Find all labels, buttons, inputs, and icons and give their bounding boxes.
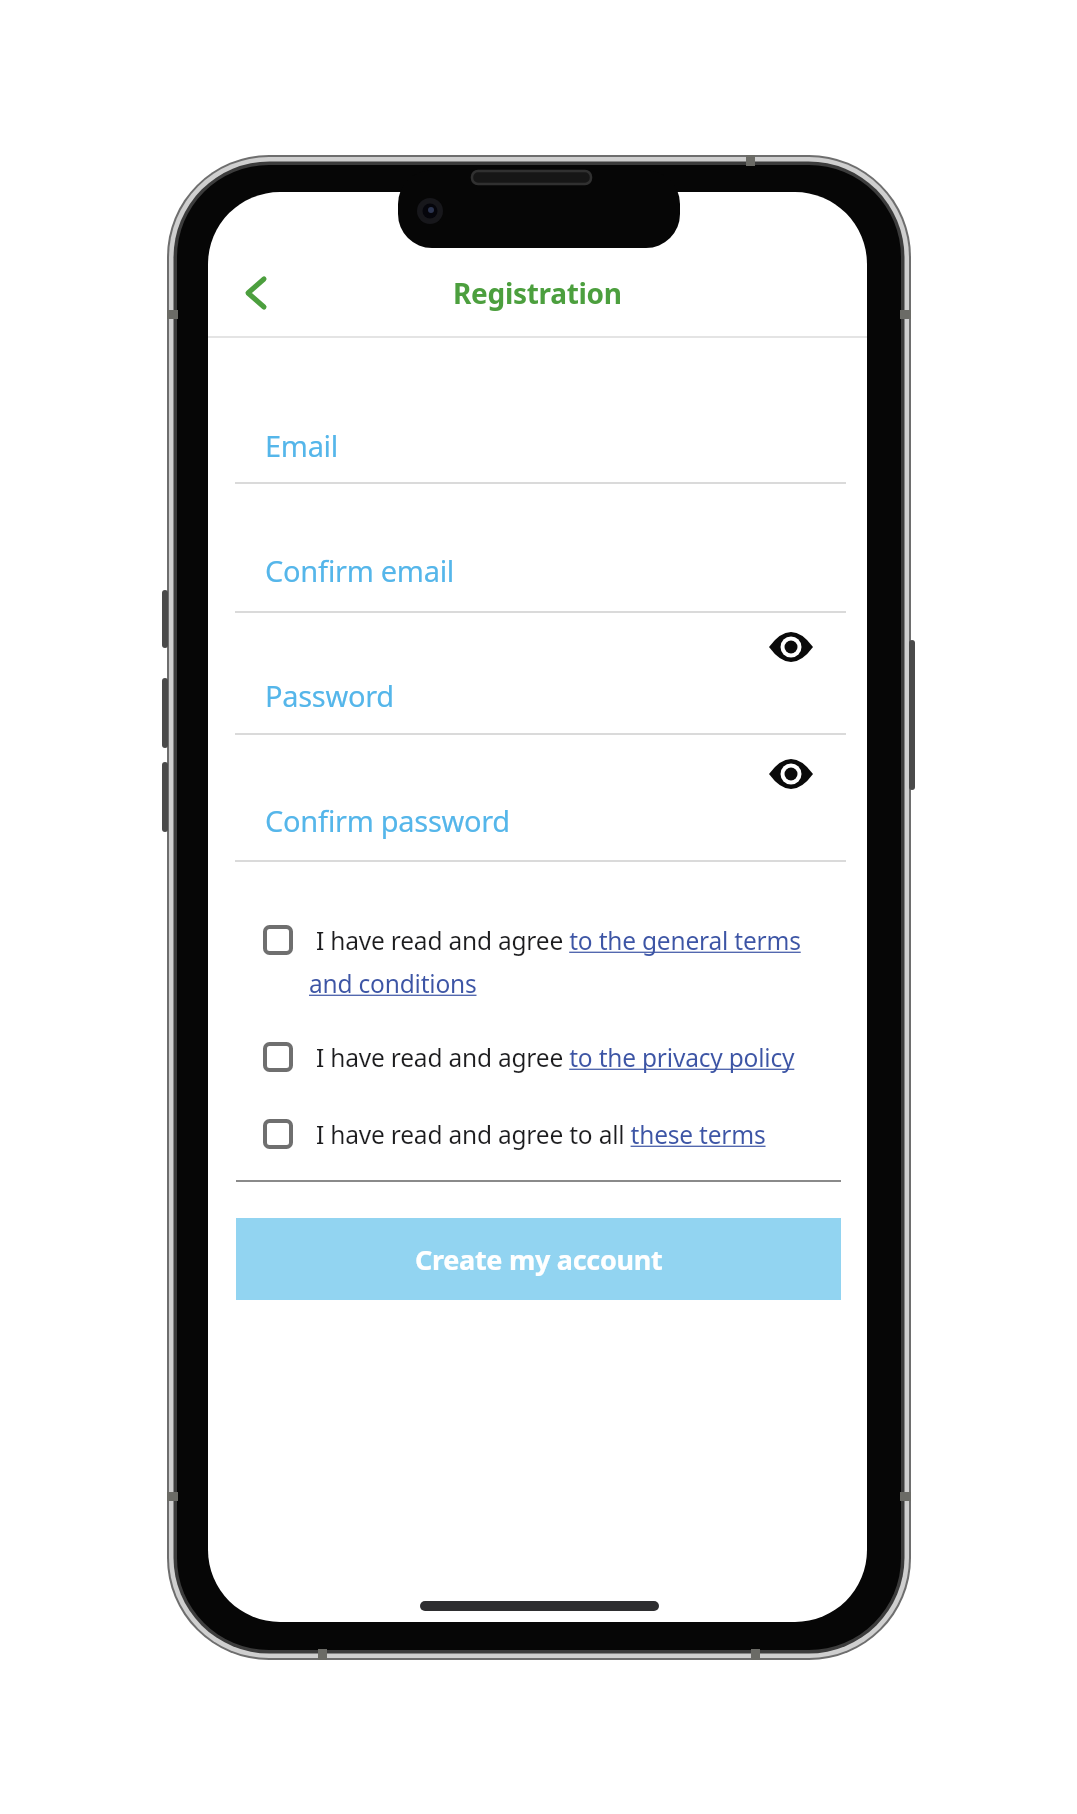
button[interactable]: Password: [265, 671, 394, 719]
staticText: I have read and agree to the general ter…: [316, 924, 801, 957]
staticText: Create my account: [415, 1241, 663, 1278]
staticText: I have read and agree to the privacy pol…: [316, 1041, 795, 1074]
button[interactable]: Confirm password: [265, 796, 510, 844]
button[interactable]: and conditions: [309, 962, 477, 1004]
button[interactable]: Email: [265, 421, 338, 469]
button[interactable]: [761, 621, 821, 673]
button[interactable]: [263, 925, 293, 955]
button[interactable]: Confirm email: [265, 546, 454, 594]
button[interactable]: I have read and agree to the general ter…: [316, 919, 801, 961]
staticText: I have read and agree to all these terms: [316, 1118, 766, 1151]
staticText: Confirm password: [265, 801, 510, 840]
button[interactable]: I have read and agree to the privacy pol…: [316, 1036, 795, 1078]
button[interactable]: I have read and agree to all these terms: [316, 1113, 766, 1155]
staticText: and conditions: [309, 967, 477, 1000]
staticText: Registration: [453, 274, 622, 312]
staticText: Email: [265, 426, 338, 465]
staticText: Confirm email: [265, 551, 454, 590]
button[interactable]: [263, 1042, 293, 1072]
button[interactable]: [232, 269, 280, 317]
staticText: Password: [265, 676, 394, 715]
button[interactable]: [263, 1119, 293, 1149]
button[interactable]: [761, 748, 821, 800]
button[interactable]: Create my account: [236, 1218, 841, 1300]
